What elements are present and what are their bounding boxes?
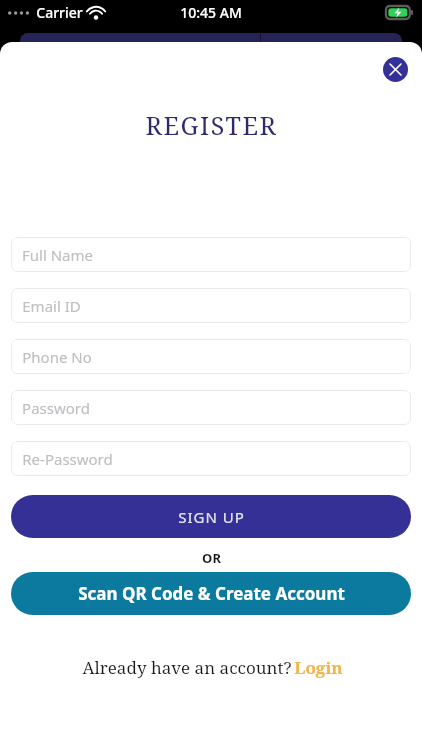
button[interactable]: Login bbox=[294, 656, 343, 679]
staticText: REGISTER bbox=[145, 108, 278, 142]
staticText: Scan QR Code & Create Account bbox=[78, 582, 345, 605]
staticText: Email ID bbox=[22, 296, 81, 316]
staticText: 10:45 AM bbox=[180, 3, 242, 22]
button[interactable]: Email ID bbox=[11, 288, 411, 323]
button[interactable]: Close bbox=[383, 57, 408, 82]
button[interactable]: SIGN UP bbox=[11, 495, 411, 538]
staticText: Login bbox=[294, 656, 343, 679]
staticText: SIGN UP bbox=[178, 507, 245, 527]
button[interactable]: Password bbox=[11, 390, 411, 425]
button[interactable]: Scan QR Code & Create Account bbox=[11, 572, 411, 615]
staticText: Password bbox=[22, 398, 90, 418]
staticText: OR bbox=[202, 549, 221, 567]
button[interactable]: Full Name bbox=[11, 237, 411, 272]
staticText: Carrier bbox=[36, 3, 83, 22]
staticText: Re-Password bbox=[22, 449, 113, 469]
staticText: Already have an account? bbox=[80, 656, 294, 679]
button[interactable]: Re-Password bbox=[11, 441, 411, 476]
staticText: Full Name bbox=[22, 245, 93, 265]
staticText: Phone No bbox=[22, 347, 92, 367]
button[interactable]: Phone No bbox=[11, 339, 411, 374]
